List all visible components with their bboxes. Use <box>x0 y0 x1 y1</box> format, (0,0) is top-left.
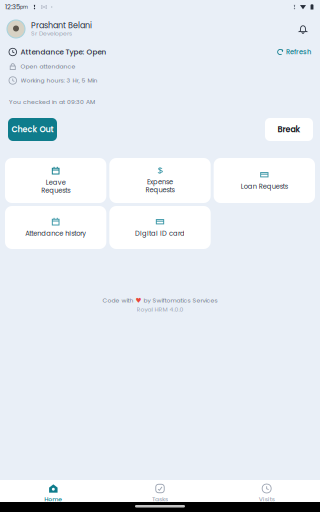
staticText: Visits <box>259 495 275 503</box>
button[interactable]: Digital ID card <box>109 206 211 249</box>
button[interactable]: Leave <box>5 158 106 203</box>
button[interactable]: Refresh <box>277 45 311 59</box>
button[interactable]: Visits <box>213 480 320 502</box>
staticText: You checked in at 09:30 AM <box>9 98 95 106</box>
staticText: Requests <box>41 186 70 195</box>
button[interactable]: Home <box>0 480 107 502</box>
staticText: 12:35 <box>5 2 20 12</box>
staticText: Refresh <box>286 47 311 57</box>
staticText: Check Out <box>11 124 53 135</box>
staticText: Loan Requests <box>241 182 288 191</box>
staticText: Prashant Belani <box>31 20 92 31</box>
button[interactable]: Notifications <box>293 19 313 39</box>
staticText: Sr Developers <box>31 29 72 38</box>
staticText: Open attendance <box>20 62 75 71</box>
staticText: Code with <box>102 296 135 305</box>
staticText: by Swiftomatics Services <box>141 296 217 305</box>
staticText: Attendance history <box>25 229 86 238</box>
staticText: Attendance Type: Open <box>20 47 106 57</box>
staticText: Expense <box>147 177 173 187</box>
staticText: Tasks <box>152 495 168 503</box>
button[interactable]: Expense <box>109 158 211 203</box>
button[interactable]: Loan Requests <box>214 158 315 203</box>
staticText: Working hours: 3 Hr, 5 Min <box>20 76 97 85</box>
staticText: ♥ <box>135 297 141 304</box>
button[interactable]: Attendance history <box>5 206 106 249</box>
staticText: Requests <box>145 185 174 195</box>
staticText: Leave <box>46 178 66 187</box>
staticText: Digital ID card <box>135 229 185 238</box>
staticText: Royal HRM 4.0.0 <box>136 305 183 314</box>
button[interactable]: Tasks <box>107 480 213 502</box>
button[interactable]: Check Out <box>8 118 57 141</box>
button[interactable]: Break <box>265 118 313 141</box>
staticText: pm <box>20 4 28 10</box>
staticText: Break <box>277 124 300 135</box>
staticText: Home <box>44 495 62 503</box>
